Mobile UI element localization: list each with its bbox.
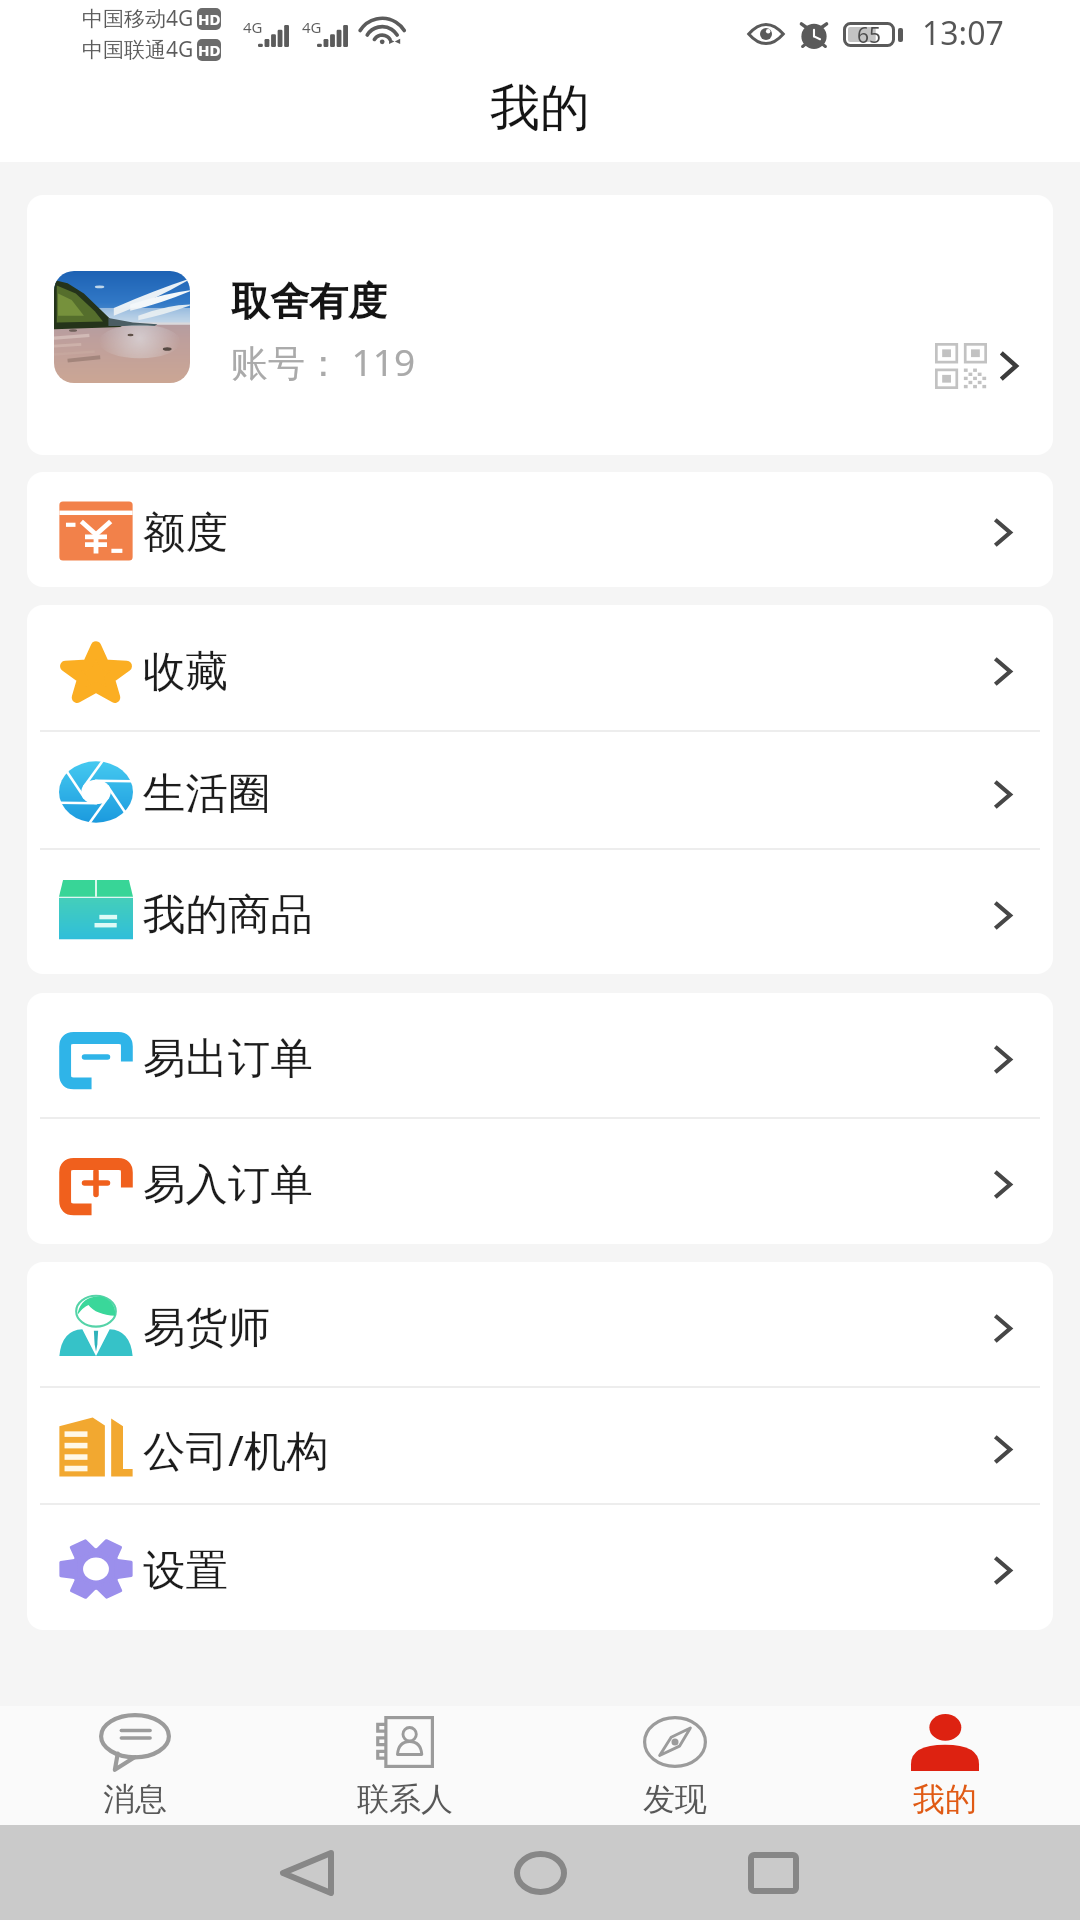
button[interactable]: 易入订单: [27, 1119, 1053, 1244]
staticText: 65: [857, 21, 882, 46]
button[interactable]: 额度: [27, 472, 1053, 587]
staticText: 发现: [643, 1779, 707, 1819]
staticText: 易出订单: [143, 1032, 313, 1086]
button[interactable]: 易货师: [27, 1262, 1053, 1388]
staticText: 设置: [143, 1544, 228, 1598]
staticText: HD: [198, 9, 221, 29]
button[interactable]: 易出订单: [27, 993, 1053, 1119]
staticText: 账号： 119: [231, 336, 416, 387]
staticText: 我的: [913, 1779, 977, 1819]
button[interactable]: 联系人: [270, 1706, 540, 1825]
button[interactable]: 公司/机构: [27, 1388, 1053, 1505]
staticText: 公司/机构: [143, 1421, 329, 1479]
staticText: HD: [198, 40, 221, 60]
button[interactable]: 二维码: [928, 333, 994, 399]
button[interactable]: Back: [272, 1838, 342, 1908]
staticText: 额度: [143, 506, 228, 560]
staticText: 中国联通4G: [82, 35, 194, 64]
staticText: 易货师: [143, 1301, 271, 1355]
button[interactable]: 发现: [540, 1706, 810, 1825]
button[interactable]: 我的商品: [27, 850, 1053, 974]
button[interactable]: 设置: [27, 1505, 1053, 1630]
staticText: 取舍有度: [231, 277, 387, 326]
staticText: 收藏: [143, 645, 228, 699]
staticText: 我的商品: [143, 888, 313, 942]
staticText: 4G: [243, 17, 263, 37]
staticText: 4G: [302, 17, 322, 37]
staticText: 生活圈: [143, 767, 271, 821]
staticText: 联系人: [357, 1779, 453, 1819]
staticText: 易入订单: [143, 1158, 313, 1212]
staticText: 中国移动4G: [82, 4, 194, 33]
staticText: 我的: [490, 77, 590, 140]
button[interactable]: Recents: [738, 1838, 808, 1908]
button[interactable]: 生活圈: [27, 732, 1053, 850]
button[interactable]: Home: [505, 1838, 575, 1908]
button[interactable]: 消息: [0, 1706, 270, 1825]
button[interactable]: 我的: [810, 1706, 1080, 1825]
button[interactable]: 收藏: [27, 605, 1053, 732]
staticText: 消息: [103, 1779, 167, 1819]
staticText: 13:07: [922, 11, 1004, 55]
